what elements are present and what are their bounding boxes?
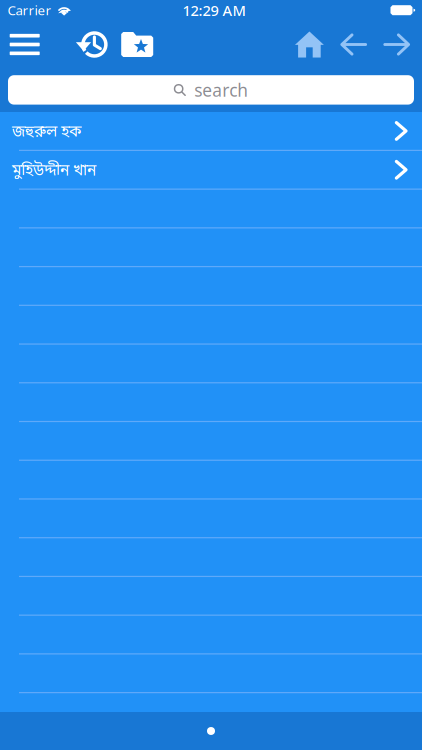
button[interactable]: Forward (385, 32, 409, 56)
button[interactable]: মুহিউদ্দীন খান (0, 151, 422, 190)
button[interactable]: History (76, 31, 108, 58)
staticText: জহুরুল হক (12, 122, 81, 143)
button[interactable]: Bookmarks (121, 32, 153, 57)
staticText: Carrier (8, 1, 52, 19)
button[interactable]: Menu (10, 34, 40, 55)
staticText: 12:29 AM (182, 0, 245, 20)
button[interactable]: Home (295, 31, 324, 57)
staticText: মুহিউদ্দীন খান (12, 161, 96, 181)
button[interactable]: Back (342, 32, 366, 56)
button[interactable]: জহুরুল হক (0, 112, 422, 151)
staticText: search (194, 78, 248, 101)
